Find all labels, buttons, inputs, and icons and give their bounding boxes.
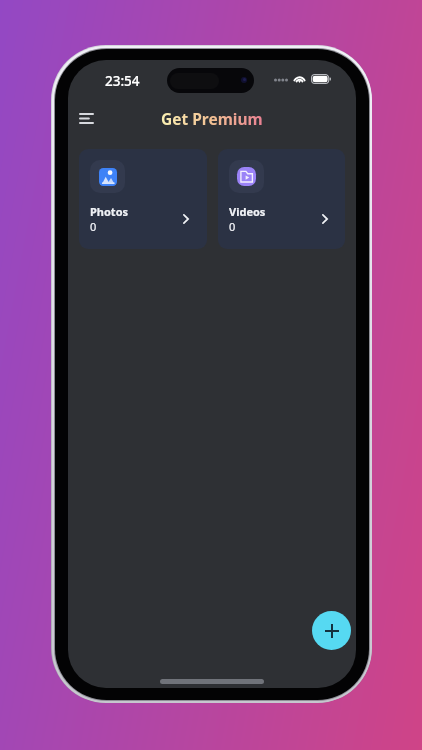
staticText: Get Premium [161, 108, 263, 129]
staticText: 0 [90, 219, 97, 234]
button[interactable]: Videos [218, 149, 345, 249]
staticText: 23:54 [105, 72, 140, 90]
button[interactable]: Menu [69, 101, 103, 135]
button[interactable]: Add [312, 611, 351, 650]
staticText: Photos [90, 204, 129, 219]
button[interactable]: Photos [79, 149, 207, 249]
staticText: 0 [229, 219, 236, 234]
staticText: Videos [229, 204, 266, 219]
